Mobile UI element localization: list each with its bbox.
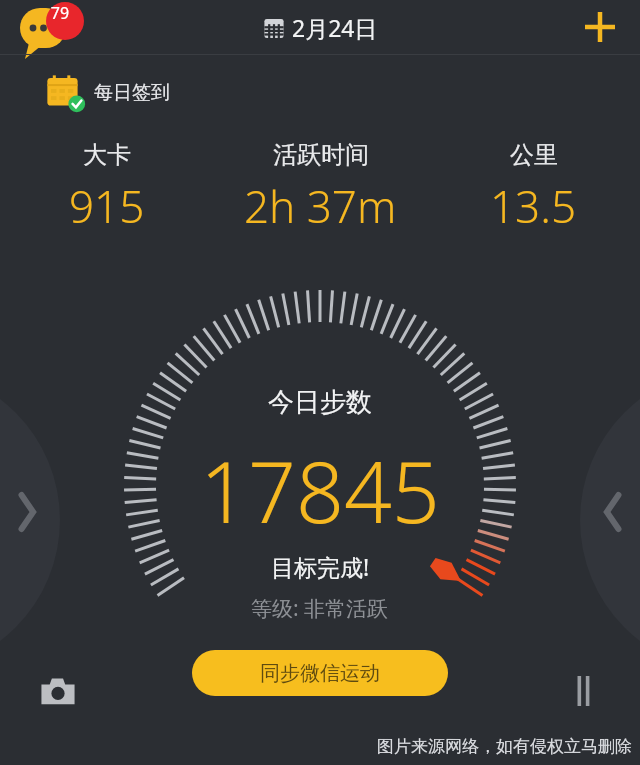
staticText: 大卡: [83, 140, 131, 170]
staticText: 每日签到: [94, 81, 170, 105]
button[interactable]: 每日签到: [44, 72, 170, 114]
staticText: 13.5: [490, 176, 577, 236]
staticText: 目标完成!: [271, 551, 370, 582]
button[interactable]: Next: [602, 495, 624, 529]
button[interactable]: 大卡: [0, 140, 214, 236]
staticText: 915: [69, 176, 145, 236]
button[interactable]: 2月24日: [262, 12, 378, 43]
staticText: 等级: 非常活跃: [251, 594, 389, 623]
staticText: 2月24日: [292, 12, 378, 43]
button[interactable]: 同步微信运动: [192, 650, 448, 696]
staticText: 公里: [510, 140, 558, 170]
staticText: 今日步数: [268, 386, 372, 419]
staticText: 图片来源网络，如有侵权立马删除: [377, 736, 632, 757]
button[interactable]: 活跃时间: [214, 140, 427, 236]
button[interactable]: Previous: [16, 495, 38, 529]
button[interactable]: Camera: [30, 665, 86, 717]
button[interactable]: Pause: [556, 665, 612, 717]
staticText: 2h 37m: [244, 176, 397, 236]
staticText: 17845: [200, 433, 440, 547]
staticText: 79: [48, 2, 72, 24]
button[interactable]: Messages: [12, 2, 80, 52]
staticText: 活跃时间: [273, 140, 369, 170]
staticText: 同步微信运动: [260, 661, 380, 686]
button[interactable]: 公里: [427, 140, 640, 236]
button[interactable]: Add: [578, 5, 622, 49]
